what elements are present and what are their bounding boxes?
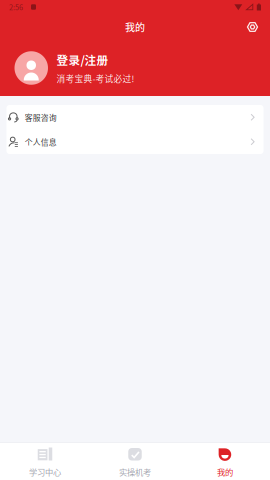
staticText: 学习中心 bbox=[29, 466, 61, 478]
button[interactable]: 我的 bbox=[180, 440, 270, 480]
button[interactable]: 客服咨询 bbox=[6, 105, 263, 129]
button[interactable]: 个人信息 bbox=[6, 129, 263, 154]
button[interactable]: 登录/注册 bbox=[0, 40, 270, 96]
button[interactable]: 学习中心 bbox=[0, 440, 90, 480]
button[interactable]: 实操机考 bbox=[90, 440, 180, 480]
staticText: 实操机考 bbox=[119, 466, 151, 478]
staticText: 登录/注册 bbox=[56, 51, 108, 68]
staticText: 消考宝典-考试必过! bbox=[56, 72, 134, 85]
button[interactable]: 设置 bbox=[241, 16, 264, 37]
staticText: 2:56 bbox=[9, 2, 23, 12]
staticText: 我的 bbox=[125, 20, 145, 34]
staticText: 我的 bbox=[217, 466, 233, 478]
staticText: 客服咨询 bbox=[25, 112, 57, 123]
staticText: 个人信息 bbox=[25, 136, 57, 147]
